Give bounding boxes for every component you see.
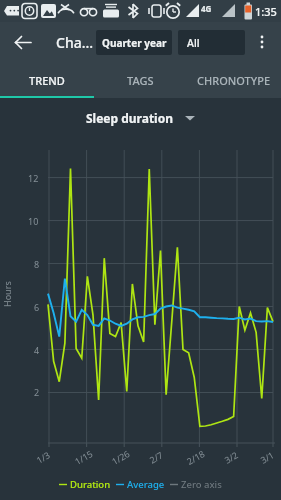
staticText: 1/3 <box>34 448 52 466</box>
button[interactable]: All <box>178 30 245 55</box>
staticText: TREND <box>29 73 65 88</box>
staticText: 4G <box>201 3 212 14</box>
staticText: Sleep duration <box>86 110 174 126</box>
staticText: 3/1 <box>258 448 276 466</box>
button[interactable]: Zero axis <box>170 478 222 491</box>
button[interactable]: Average <box>116 478 165 491</box>
staticText: 4 <box>34 344 40 356</box>
button[interactable]: Back <box>6 26 38 58</box>
button[interactable]: TAGS <box>94 62 187 98</box>
button[interactable]: Quarter year <box>96 30 172 55</box>
staticText: Zero axis <box>181 478 222 491</box>
staticText: 6 <box>34 301 40 313</box>
staticText: Cha... <box>56 33 94 52</box>
staticText: TAGS <box>127 73 154 88</box>
staticText: 12 <box>28 172 39 184</box>
staticText: CHRONOTYPE <box>197 73 271 88</box>
button[interactable]: Duration <box>59 478 111 491</box>
staticText: 2/18 <box>184 447 207 467</box>
button[interactable]: CHRONOTYPE <box>187 62 281 98</box>
button[interactable]: Sleep duration <box>0 106 281 130</box>
button[interactable]: More options <box>246 26 278 58</box>
staticText: 8 <box>34 258 40 270</box>
staticText: 3/2 <box>222 448 240 466</box>
staticText: 2/7 <box>147 448 165 466</box>
staticText: 1/15 <box>72 447 95 467</box>
staticText: 1:35 <box>255 4 277 19</box>
staticText: 2 <box>34 386 40 398</box>
staticText: Hours <box>1 281 13 307</box>
staticText: 1/26 <box>109 447 132 467</box>
staticText: Duration <box>70 478 111 491</box>
staticText: All <box>187 36 200 50</box>
button[interactable]: TREND <box>0 62 94 98</box>
staticText: Quarter year <box>102 36 167 50</box>
staticText: 10 <box>28 215 39 227</box>
staticText: Average <box>127 478 165 491</box>
